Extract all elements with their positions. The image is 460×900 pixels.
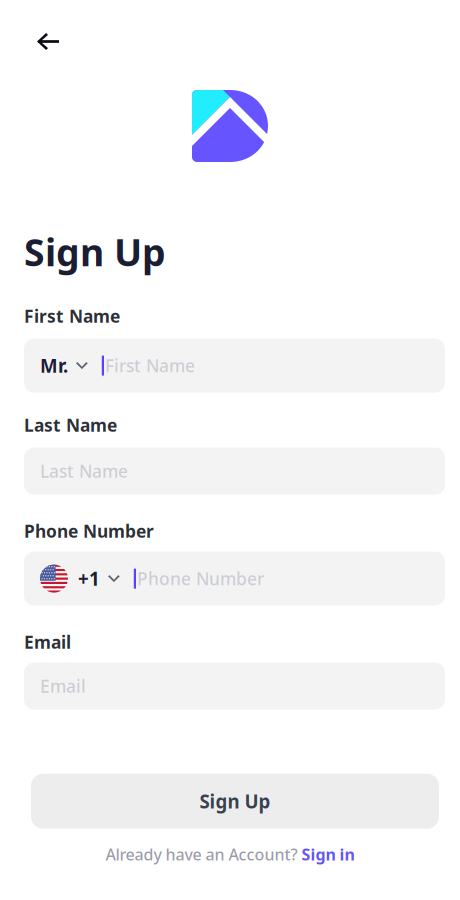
- staticText: Mr.: [40, 353, 68, 378]
- button[interactable]: Last Name: [24, 448, 445, 495]
- button[interactable]: +1: [24, 552, 445, 606]
- button[interactable]: Mr.: [24, 339, 445, 393]
- button[interactable]: Email: [24, 663, 445, 710]
- staticText: Sign in: [301, 844, 354, 865]
- staticText: +1: [78, 566, 100, 591]
- staticText: Phone Number: [137, 567, 264, 590]
- staticText: Sign Up: [199, 789, 270, 814]
- staticText: Phone Number: [24, 520, 154, 543]
- staticText: First Name: [24, 305, 120, 328]
- button[interactable]: Sign Up: [31, 774, 439, 829]
- staticText: Last Name: [24, 414, 117, 437]
- staticText: First Name: [105, 354, 195, 377]
- staticText: Email: [40, 675, 86, 698]
- staticText: Last Name: [40, 460, 128, 483]
- staticText: Sign Up: [24, 227, 166, 277]
- staticText: Already have an Account?: [105, 844, 301, 865]
- button[interactable]: Back: [27, 25, 69, 58]
- button[interactable]: Already have an Account?: [105, 844, 354, 865]
- staticText: Email: [24, 631, 71, 654]
